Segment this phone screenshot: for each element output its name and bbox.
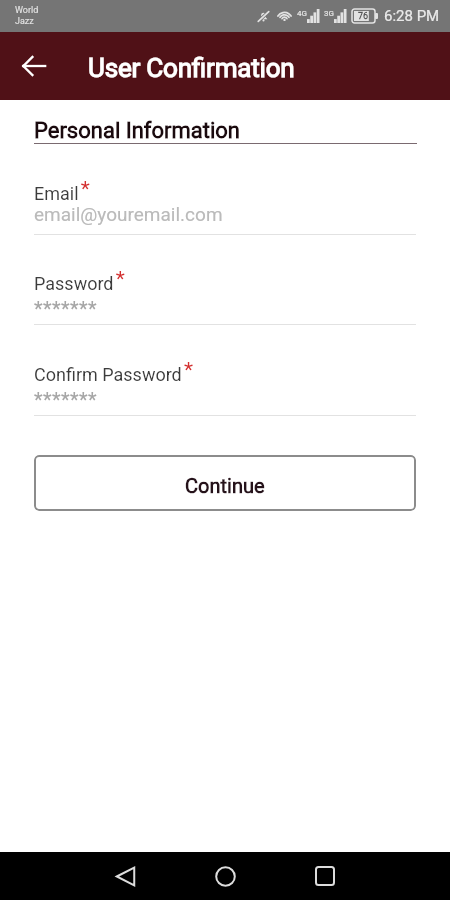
button[interactable]: Home [201, 852, 249, 900]
staticText: email@youremail.com [34, 203, 223, 225]
button[interactable]: Recent apps [301, 852, 349, 900]
staticText: ******* [34, 297, 98, 320]
staticText: 3G [324, 9, 334, 18]
button[interactable]: Back [101, 852, 149, 900]
staticText: Personal Information [34, 118, 240, 144]
staticText: 6:28 PM [384, 7, 440, 25]
staticText: User Confirmation [88, 53, 295, 83]
staticText: Email * [34, 177, 90, 205]
button[interactable]: Back [12, 44, 56, 88]
staticText: Confirm Password * [34, 358, 194, 386]
button[interactable]: Continue [34, 455, 416, 511]
staticText: ******* [34, 388, 98, 411]
staticText: Continue [185, 474, 265, 497]
staticText: 4G [297, 9, 307, 18]
staticText: Password * [34, 267, 125, 295]
staticText: World [15, 5, 39, 16]
staticText: Jazz [15, 16, 34, 27]
staticText: 76 [358, 11, 369, 22]
